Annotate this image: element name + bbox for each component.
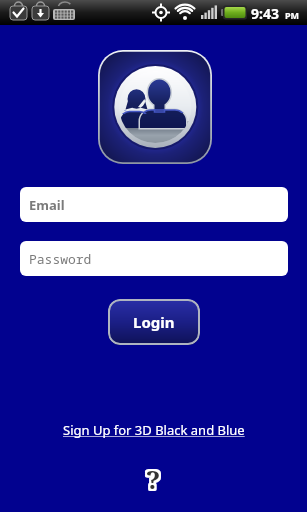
button[interactable]: Password — [20, 241, 288, 276]
staticText: ? — [146, 459, 161, 494]
button[interactable]: ? — [146, 461, 161, 496]
button[interactable]: Email — [20, 187, 288, 222]
staticText: 9:43 — [251, 4, 279, 23]
staticText: Email — [29, 196, 65, 214]
staticText: Password — [29, 250, 92, 268]
staticText: ? — [148, 463, 163, 498]
staticText: ? — [144, 463, 159, 498]
staticText: ? — [146, 461, 161, 496]
staticText: ? — [148, 461, 163, 496]
staticText: ? — [148, 459, 163, 494]
staticText: Login — [133, 312, 175, 332]
staticText: ? — [146, 463, 161, 498]
staticText: ? — [144, 459, 159, 494]
button[interactable]: Sign Up for 3D Black and Blue — [63, 421, 245, 439]
staticText: ? — [144, 461, 159, 496]
staticText: Sign Up for 3D Black and Blue — [63, 421, 245, 439]
button[interactable]: Login — [108, 299, 200, 345]
staticText: PM — [285, 9, 300, 21]
